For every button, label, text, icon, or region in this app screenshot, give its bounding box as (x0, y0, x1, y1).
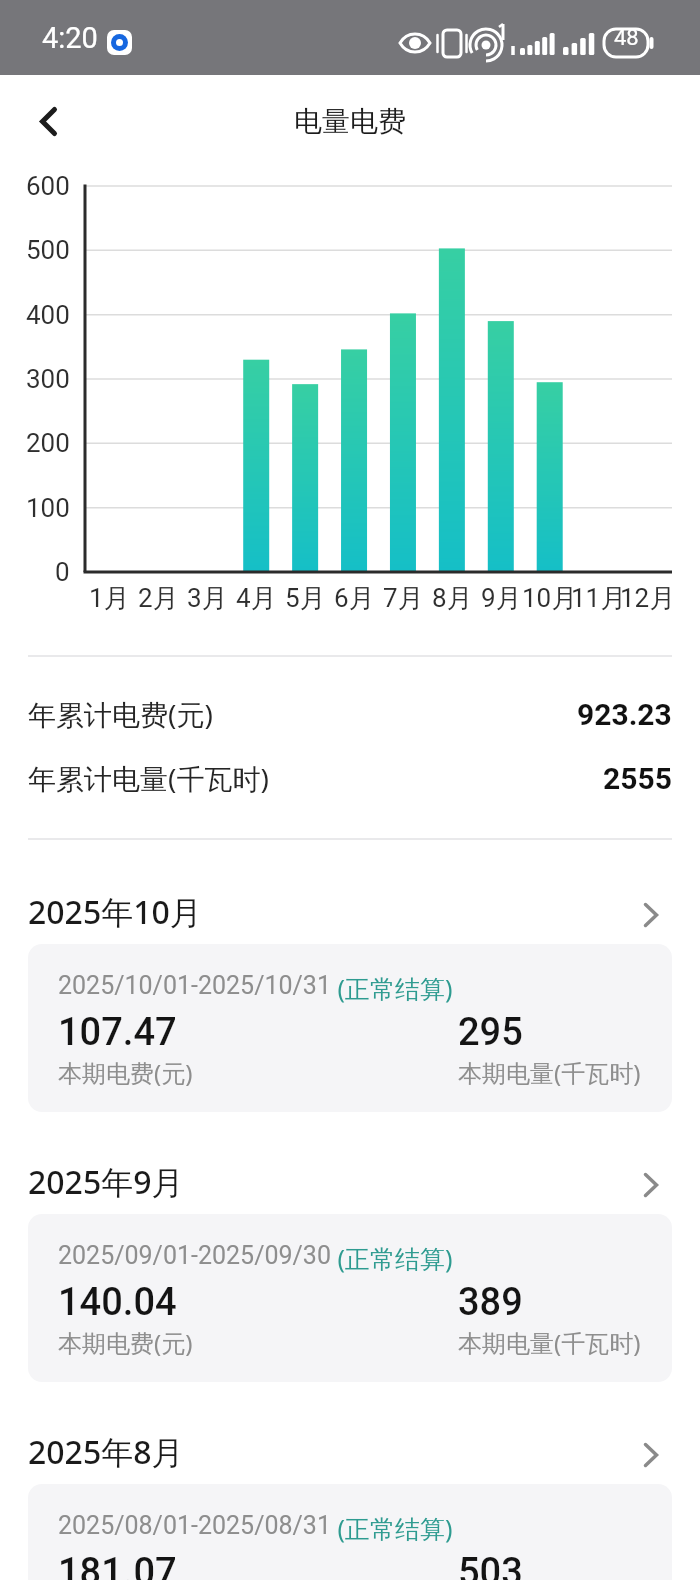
staticText: 本期电费(元) (58, 1056, 193, 1089)
button[interactable]: 2025年8月 (28, 1428, 672, 1476)
button[interactable] (24, 95, 72, 147)
staticText: 107.47 (58, 1010, 177, 1054)
staticText: 2025/08/01-2025/08/31 (58, 1511, 331, 1540)
staticText: 600 (26, 171, 70, 201)
staticText: 2025/10/01-2025/10/31 (58, 971, 331, 1000)
staticText: 本期电量(千瓦时) (458, 1326, 641, 1359)
staticText: 6月 (334, 582, 375, 615)
button[interactable]: 2025/10/01-2025/10/31 (28, 944, 672, 1112)
staticText: 48 (614, 25, 639, 51)
staticText: 4:20 (42, 21, 98, 55)
staticText: 2025/09/01-2025/09/30 (58, 1241, 331, 1270)
staticText: 2555 (603, 761, 672, 796)
staticText: 389 (458, 1280, 523, 1324)
staticText: (正常结算) (331, 1241, 453, 1275)
staticText: 300 (26, 364, 70, 394)
staticText: 年累计电量(千瓦时) (28, 759, 269, 797)
staticText: 11月 (571, 582, 627, 615)
staticText: 140.04 (58, 1280, 177, 1324)
staticText: (正常结算) (331, 1511, 453, 1545)
staticText: 2025年8月 (28, 1430, 184, 1474)
staticText: 5月 (285, 582, 326, 615)
button[interactable]: 2025年9月 (28, 1158, 672, 1206)
staticText: 2025年10月 (28, 890, 202, 934)
staticText: 电量电费 (294, 104, 406, 139)
staticText: 0 (55, 557, 70, 587)
staticText: (正常结算) (331, 971, 453, 1005)
staticText: 9月 (481, 582, 522, 615)
button[interactable]: 2025年10月 (28, 888, 672, 936)
staticText: 200 (26, 428, 70, 458)
staticText: 503 (458, 1550, 523, 1580)
staticText: 10月 (522, 582, 578, 615)
staticText: 923.23 (577, 697, 672, 732)
staticText: 295 (458, 1010, 523, 1054)
staticText: 4月 (236, 582, 277, 615)
staticText: 7月 (383, 582, 424, 615)
staticText: 181.07 (58, 1550, 177, 1580)
staticText: 1月 (89, 582, 130, 615)
staticText: 年累计电费(元) (28, 695, 213, 733)
staticText: 400 (26, 300, 70, 330)
staticText: 本期电费(元) (58, 1326, 193, 1359)
button[interactable]: 2025/08/01-2025/08/31 (28, 1484, 672, 1580)
staticText: 2月 (138, 582, 179, 615)
staticText: 8月 (432, 582, 473, 615)
staticText: 500 (26, 235, 70, 265)
button[interactable]: 2025/09/01-2025/09/30 (28, 1214, 672, 1382)
staticText: 3月 (187, 582, 228, 615)
staticText: 本期电量(千瓦时) (458, 1056, 641, 1089)
staticText: 2025年9月 (28, 1160, 184, 1204)
staticText: 12月 (620, 582, 676, 615)
staticText: 100 (26, 493, 70, 523)
